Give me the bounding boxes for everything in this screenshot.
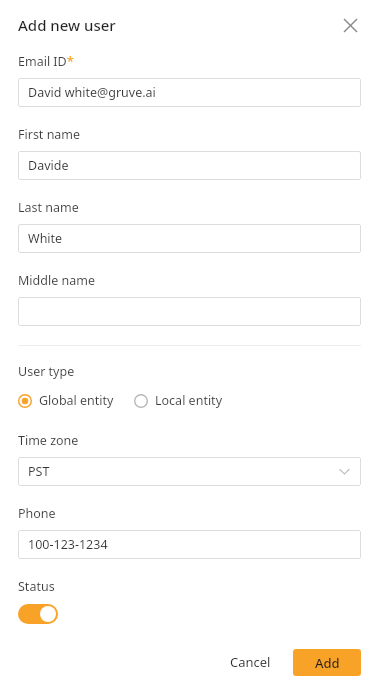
staticText: David white@gruve.ai [28,84,156,101]
button[interactable]: Cancel [220,646,281,678]
button[interactable]: Add [293,649,361,676]
staticText: Phone [18,505,56,522]
staticText: 100-123-1234 [28,536,108,553]
button[interactable]: Close [339,14,361,36]
button[interactable]: PST [18,457,361,486]
staticText: PST [28,463,50,480]
button[interactable]: Davide [18,151,361,180]
button[interactable] [18,297,361,326]
staticText: First name [18,126,81,143]
staticText: Add new user [18,15,116,35]
staticText: Cancel [230,653,271,671]
button[interactable]: David white@gruve.ai [18,78,361,107]
staticText: Last name [18,199,79,216]
staticText: Time zone [18,432,79,449]
staticText: Davide [28,157,69,174]
staticText: Email ID* [18,52,74,70]
staticText: Global entity [39,392,114,409]
staticText: White [28,230,63,247]
staticText: Middle name [18,272,95,289]
button[interactable]: White [18,224,361,253]
button[interactable]: Local entity [134,392,223,409]
staticText: Status [18,578,55,595]
button[interactable]: 100-123-1234 [18,530,361,559]
staticText: Local entity [155,392,223,409]
staticText: Add [315,654,340,672]
staticText: User type [18,363,75,380]
button[interactable]: Status enabled [18,604,58,624]
button[interactable]: Global entity [18,392,114,409]
